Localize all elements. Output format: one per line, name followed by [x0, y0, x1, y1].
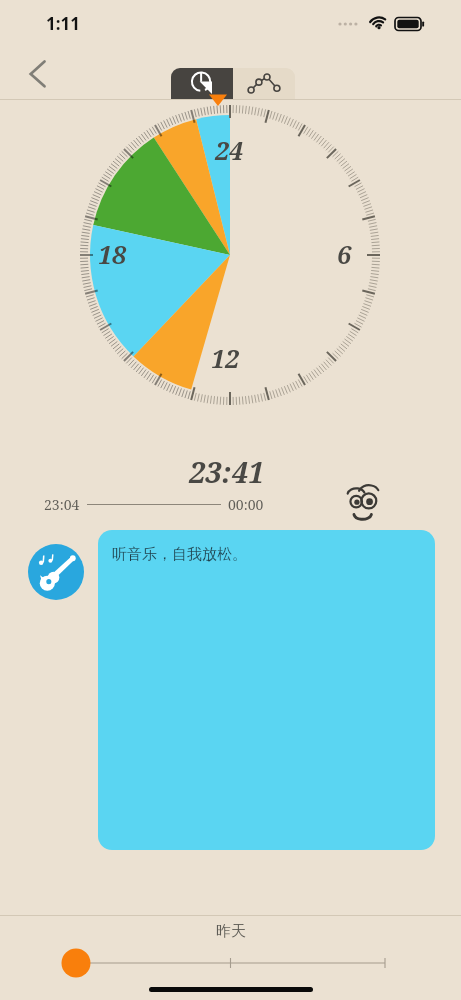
button[interactable]: Sleep quality rating face	[345, 488, 379, 522]
button[interactable]: Sleep stage pie chart	[171, 68, 233, 99]
staticText: 昨天	[216, 922, 246, 941]
button[interactable]: Music tag	[28, 544, 84, 600]
staticText: 18	[98, 237, 126, 271]
staticText: 听音乐，自我放松。	[112, 545, 247, 564]
button[interactable]: Trend line chart	[233, 68, 295, 99]
staticText: 23:04	[44, 495, 80, 514]
staticText: 00:00	[228, 495, 264, 514]
staticText: 12	[211, 341, 239, 375]
staticText: 24	[215, 133, 243, 167]
staticText: 1:11	[46, 12, 80, 35]
button[interactable]: Back	[16, 50, 62, 96]
button[interactable]: Date slider	[0, 950, 461, 976]
staticText: 6	[337, 237, 351, 271]
button[interactable]: 听音乐，自我放松。	[98, 530, 435, 850]
staticText: 23:41	[189, 452, 265, 491]
